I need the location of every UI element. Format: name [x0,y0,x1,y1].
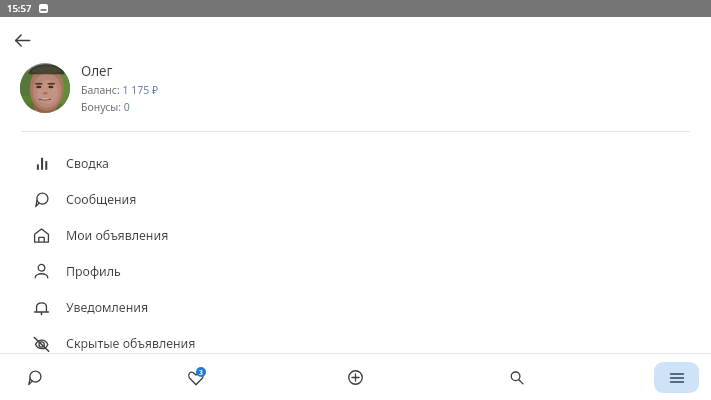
staticText: 3 [199,368,203,377]
staticText: Профиль [66,263,121,280]
staticText: Мои объявления [66,227,169,244]
button[interactable]: Favorites [173,362,218,393]
button[interactable]: Add [333,362,378,393]
staticText: Сообщения [66,191,137,208]
staticText: Сводка [66,155,109,172]
staticText: Бонусы: 0 [81,100,130,114]
button[interactable]: Олег [0,62,711,114]
button[interactable]: Search [494,362,539,393]
button[interactable]: Скрытые объявления [0,325,711,361]
button[interactable]: Мои объявления [0,217,711,253]
staticText: Баланс: 1 175 ₽ [81,83,159,97]
button[interactable]: Уведомления [0,289,711,325]
button[interactable]: Back [8,26,36,54]
staticText: Олег [81,62,113,80]
button[interactable]: Сообщения [0,181,711,217]
button[interactable]: Messages [12,362,57,393]
staticText: 15:57 [7,2,32,15]
button[interactable]: Сводка [0,145,711,181]
staticText: Скрытые объявления [66,335,196,352]
button[interactable]: Menu [654,362,699,393]
staticText: Уведомления [66,299,149,316]
button[interactable]: Профиль [0,253,711,289]
